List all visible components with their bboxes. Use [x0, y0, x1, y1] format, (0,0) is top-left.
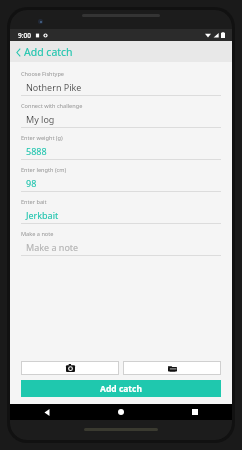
- button[interactable]: Make a note: [21, 230, 221, 262]
- button[interactable]: Add catch: [21, 380, 221, 397]
- staticText: 9:00: [18, 31, 31, 40]
- staticText: Jerkbait: [26, 209, 59, 221]
- staticText: Choose Fishtype: [21, 70, 64, 78]
- button[interactable]: Choose Fishtype: [21, 70, 221, 102]
- staticText: Enter bait: [21, 198, 47, 206]
- staticText: Enter length (cm): [21, 166, 67, 174]
- staticText: Enter weight (g): [21, 134, 63, 142]
- staticText: Make a note: [26, 241, 79, 253]
- button[interactable]: Take photo: [21, 361, 119, 375]
- staticText: Add catch: [100, 383, 142, 395]
- staticText: Add catch: [24, 45, 73, 59]
- button[interactable]: Choose from gallery: [123, 361, 221, 375]
- other: Back: [16, 48, 21, 57]
- button[interactable]: Connect with challenge: [21, 102, 221, 134]
- staticText: Make a note: [21, 230, 54, 238]
- button[interactable]: Back: [10, 404, 84, 420]
- button[interactable]: Back: [10, 42, 81, 62]
- staticText: Connect with challenge: [21, 102, 83, 110]
- button[interactable]: Enter bait: [21, 198, 221, 230]
- button[interactable]: Recent apps: [158, 404, 232, 420]
- button[interactable]: Enter weight (g): [21, 134, 221, 166]
- button[interactable]: Enter length (cm): [21, 166, 221, 198]
- staticText: Nothern Pike: [26, 81, 82, 93]
- staticText: 98: [26, 177, 37, 189]
- staticText: 5888: [26, 145, 47, 157]
- button[interactable]: Home: [84, 404, 158, 420]
- staticText: My log: [26, 113, 55, 125]
